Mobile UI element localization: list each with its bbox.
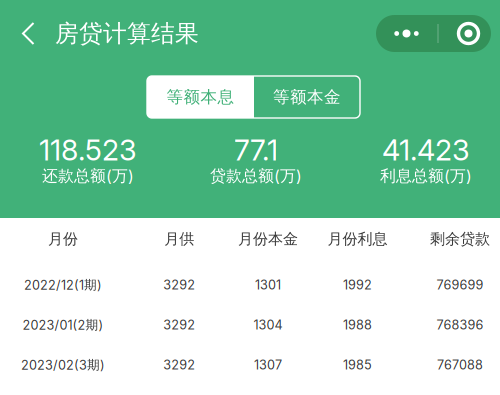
staticText: 41.423 <box>382 133 470 167</box>
staticText: 2022/12(1期) <box>24 277 102 293</box>
staticText: 2023/02(3期) <box>21 357 105 373</box>
staticText: 768396 <box>436 317 483 333</box>
staticText: 月供 <box>164 229 194 248</box>
staticText: 1301 <box>255 277 281 293</box>
staticText: 769699 <box>436 277 483 293</box>
staticText: 3292 <box>163 317 195 333</box>
button[interactable]: 等额本金 <box>254 76 360 118</box>
button[interactable]: More <box>376 15 437 52</box>
staticText: 等额本金 <box>273 87 341 107</box>
button[interactable]: Close <box>442 15 494 52</box>
staticText: 利息总额(万) <box>380 166 472 186</box>
staticText: 还款总额(万) <box>42 166 134 186</box>
staticText: 3292 <box>163 277 195 293</box>
button[interactable]: Back <box>6 11 50 55</box>
staticText: 剩余贷款 <box>430 229 490 248</box>
staticText: 贷款总额(万) <box>210 166 302 186</box>
staticText: 1985 <box>343 357 372 373</box>
staticText: 77.1 <box>234 133 278 167</box>
staticText: 等额本息 <box>166 87 234 107</box>
staticText: 2023/01(2期) <box>22 317 103 333</box>
staticText: 3292 <box>163 357 195 373</box>
staticText: 1304 <box>253 317 282 333</box>
staticText: 1988 <box>343 317 372 333</box>
staticText: 房贷计算结果 <box>55 19 199 48</box>
staticText: 767088 <box>437 357 483 373</box>
staticText: 月份本金 <box>238 229 298 248</box>
staticText: 月份利息 <box>328 229 388 248</box>
staticText: 118.523 <box>39 133 137 167</box>
button[interactable]: 等额本息 <box>147 76 254 118</box>
staticText: 月份 <box>48 229 78 248</box>
staticText: 1992 <box>343 277 372 293</box>
staticText: 1307 <box>254 357 282 373</box>
